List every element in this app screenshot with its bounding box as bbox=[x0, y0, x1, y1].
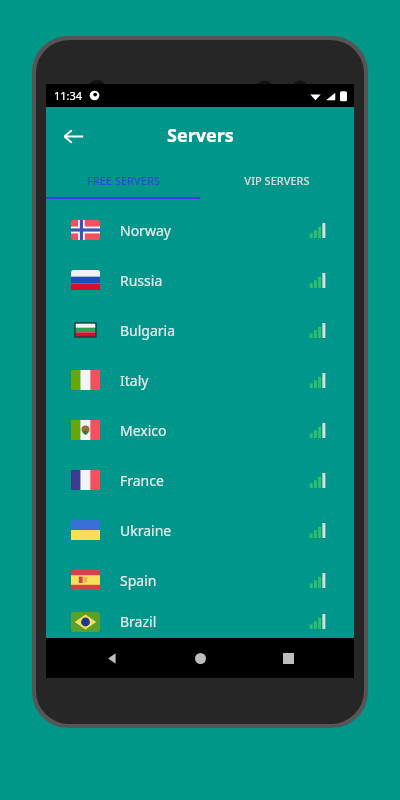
staticText: Bulgaria bbox=[120, 321, 176, 340]
staticText: Russia bbox=[120, 271, 163, 290]
button[interactable]: Spain bbox=[46, 555, 354, 605]
button[interactable]: Bulgaria bbox=[46, 305, 354, 355]
staticText: VIP SERVERS bbox=[244, 173, 310, 188]
staticText: 11:34 bbox=[54, 88, 83, 103]
staticText: France bbox=[120, 471, 164, 490]
button[interactable]: Mexico bbox=[46, 405, 354, 455]
button[interactable]: Back bbox=[53, 116, 93, 156]
button[interactable]: Back bbox=[90, 638, 134, 678]
staticText: Mexico bbox=[120, 421, 167, 440]
button[interactable]: France bbox=[46, 455, 354, 505]
button[interactable]: Ukraine bbox=[46, 505, 354, 555]
button[interactable]: Norway bbox=[46, 205, 354, 255]
button[interactable]: Russia bbox=[46, 255, 354, 305]
staticText: Ukraine bbox=[120, 521, 172, 540]
staticText: Brazil bbox=[120, 612, 157, 631]
button[interactable]: Recents bbox=[266, 638, 310, 678]
button[interactable]: VIP SERVERS bbox=[200, 164, 354, 197]
staticText: Spain bbox=[120, 571, 157, 590]
staticText: Norway bbox=[120, 221, 171, 240]
button[interactable]: Home bbox=[178, 638, 222, 678]
staticText: Italy bbox=[120, 371, 149, 390]
staticText: Servers bbox=[167, 123, 234, 148]
button[interactable]: Italy bbox=[46, 355, 354, 405]
button[interactable]: FREE SERVERS bbox=[46, 164, 200, 197]
button[interactable]: Brazil bbox=[46, 605, 354, 638]
staticText: FREE SERVERS bbox=[87, 173, 160, 188]
